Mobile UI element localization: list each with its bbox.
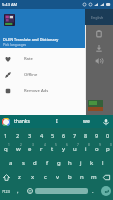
button[interactable]: u <box>69 142 80 156</box>
button[interactable]: 8 <box>80 128 91 142</box>
button[interactable]: f <box>41 156 53 170</box>
button[interactable]: n <box>76 170 88 184</box>
button[interactable]: z <box>13 170 26 184</box>
staticText: 4 <box>44 143 46 147</box>
staticText: y <box>62 145 66 153</box>
button[interactable]: 1 <box>0 128 12 142</box>
button[interactable]: Enter <box>101 186 111 196</box>
button[interactable]: c <box>39 170 52 184</box>
button[interactable]: b <box>64 170 76 184</box>
staticText: a <box>9 159 13 167</box>
button[interactable]: 2 <box>12 128 24 142</box>
staticText: w <box>16 145 21 153</box>
button[interactable]: Listen <box>95 57 103 65</box>
staticText: Pick languages <box>3 42 27 46</box>
staticText: c <box>44 173 47 181</box>
button[interactable]: g <box>53 156 64 170</box>
button[interactable]: thanks <box>14 118 30 125</box>
staticText: 5:43 AM <box>2 2 18 7</box>
staticText: o <box>95 145 99 153</box>
button[interactable]: x <box>26 170 39 184</box>
button[interactable]: j <box>75 156 86 170</box>
staticText: s <box>22 159 25 167</box>
button[interactable]: r <box>36 142 47 156</box>
staticText: 1 <box>8 143 10 147</box>
staticText: . <box>92 187 94 195</box>
button[interactable]: ?123 <box>0 184 12 198</box>
button[interactable]: m <box>88 170 100 184</box>
staticText: v <box>56 173 60 181</box>
staticText: g <box>57 159 61 167</box>
button[interactable]: q <box>0 142 12 156</box>
staticText: e <box>28 145 32 153</box>
staticText: 7 <box>73 132 77 139</box>
staticText: u <box>73 145 77 153</box>
button[interactable]: . <box>88 184 98 198</box>
staticText: 4 <box>40 132 44 139</box>
button[interactable]: 0 <box>102 128 113 142</box>
staticText: m <box>91 173 97 181</box>
button[interactable]: Space <box>35 188 88 194</box>
staticText: 5 <box>55 143 57 147</box>
staticText: j <box>80 159 82 167</box>
button[interactable]: a <box>5 156 17 170</box>
staticText: 6 <box>62 132 66 139</box>
button[interactable]: Shift <box>0 170 13 184</box>
button[interactable]: Backspace <box>100 170 113 184</box>
button[interactable]: we <box>83 118 90 125</box>
staticText: 8 <box>88 143 90 147</box>
button[interactable]: Emoji <box>24 184 35 198</box>
staticText: 3 <box>32 143 34 147</box>
button[interactable]: l <box>97 156 108 170</box>
staticText: 1 <box>4 132 8 139</box>
staticText: 9 <box>99 143 101 147</box>
button[interactable]: 4 <box>36 128 47 142</box>
button[interactable]: d <box>29 156 41 170</box>
button[interactable]: h <box>64 156 75 170</box>
staticText: i <box>85 145 87 153</box>
button[interactable]: 6 <box>58 128 69 142</box>
staticText: 3 <box>28 132 32 139</box>
staticText: 9 <box>95 132 99 139</box>
staticText: Remove Ads <box>24 88 49 94</box>
button[interactable]: App icon <box>4 14 15 26</box>
staticText: Offline <box>24 72 38 78</box>
button[interactable]: Download <box>95 44 103 52</box>
button[interactable]: 7 <box>69 128 80 142</box>
button[interactable]: I <box>56 118 58 125</box>
button[interactable]: k <box>86 156 97 170</box>
staticText: Rate <box>24 56 33 62</box>
button[interactable]: , <box>12 184 24 198</box>
staticText: q <box>4 145 8 153</box>
button[interactable]: Voice input <box>102 118 110 126</box>
button[interactable]: 5 <box>47 128 58 142</box>
staticText: n <box>80 173 84 181</box>
button[interactable]: 9 <box>91 128 102 142</box>
button[interactable]: e <box>24 142 36 156</box>
button[interactable]: Google <box>2 118 10 126</box>
button[interactable]: 3 <box>24 128 36 142</box>
staticText: 6 <box>66 143 68 147</box>
button[interactable]: y <box>58 142 69 156</box>
staticText: 0 <box>110 143 112 147</box>
button[interactable]: i <box>80 142 91 156</box>
staticText: l <box>102 159 104 167</box>
staticText: 8 <box>84 132 88 139</box>
staticText: b <box>68 173 72 181</box>
button[interactable]: Offline <box>0 67 85 83</box>
staticText: 5 <box>51 132 55 139</box>
button[interactable]: p <box>102 142 113 156</box>
button[interactable]: v <box>52 170 64 184</box>
button[interactable]: o <box>91 142 102 156</box>
button[interactable]: t <box>47 142 58 156</box>
staticText: t <box>51 145 54 153</box>
staticText: x <box>31 173 35 181</box>
button[interactable]: Copy <box>95 30 103 38</box>
staticText: 2 <box>16 132 20 139</box>
button[interactable]: s <box>17 156 29 170</box>
button[interactable]: Rate <box>0 51 85 67</box>
staticText: Di-EN Translate and Dictionary <box>3 37 59 42</box>
button[interactable]: Remove Ads <box>0 83 85 99</box>
button[interactable]: w <box>12 142 24 156</box>
staticText: d <box>33 159 37 167</box>
